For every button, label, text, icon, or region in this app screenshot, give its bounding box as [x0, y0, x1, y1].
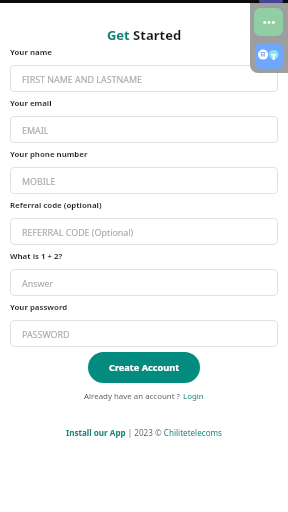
button[interactable]: PASSWORD — [10, 320, 278, 347]
staticText: Referral code (optional) — [10, 200, 102, 211]
staticText: Your phone number — [10, 149, 88, 160]
staticText: Answer — [22, 277, 54, 289]
button[interactable]: Install our App | 2023 © Chilitetelecoms — [66, 427, 223, 438]
staticText: What is 1 + 2? — [10, 251, 63, 262]
button[interactable]: REFERRAL CODE (Optional) — [10, 218, 278, 245]
staticText: Get Started — [0, 26, 288, 44]
staticText: FIRST NAME AND LASTNAME — [22, 73, 142, 85]
staticText: Your password — [10, 302, 68, 313]
staticText: Your email — [10, 98, 52, 109]
button[interactable]: MOBILE — [10, 167, 278, 194]
staticText: T — [271, 50, 277, 62]
staticText: REFERRAL CODE (Optional) — [22, 226, 134, 238]
staticText: MOBILE — [22, 175, 56, 187]
button[interactable]: Login — [183, 391, 204, 402]
button[interactable]: EMAIL — [10, 116, 278, 143]
button[interactable]: Create Account — [88, 352, 200, 383]
button[interactable]: FIRST NAME AND LASTNAME — [10, 65, 278, 92]
staticText: Your name — [10, 47, 52, 58]
staticText: Create Account — [109, 361, 180, 374]
button[interactable]: Answer — [10, 269, 278, 296]
staticText: Already have an account ? — [84, 391, 183, 402]
staticText: EMAIL — [22, 124, 49, 136]
button[interactable]: More options — [254, 8, 283, 36]
button[interactable]: Translate — [255, 43, 283, 69]
staticText: PASSWORD — [22, 328, 70, 340]
